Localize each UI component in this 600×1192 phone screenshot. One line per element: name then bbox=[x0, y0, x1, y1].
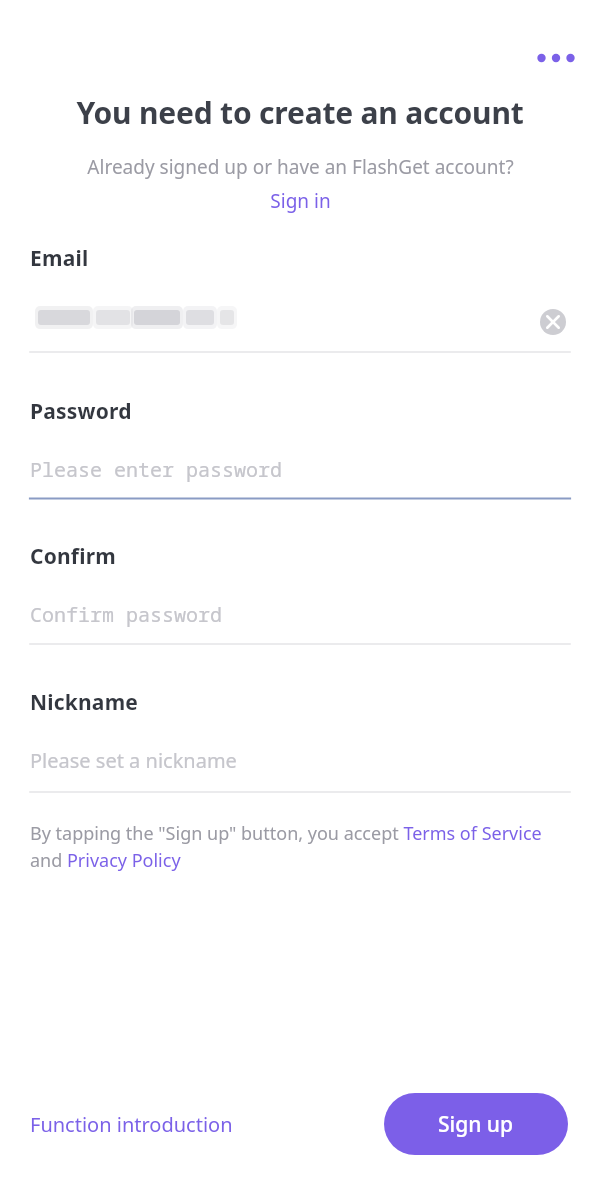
button[interactable]: Clear email bbox=[30, 305, 570, 339]
button[interactable]: Confirm password bbox=[30, 601, 570, 628]
staticText: Email bbox=[30, 244, 89, 273]
button[interactable]: Sign up bbox=[384, 1093, 568, 1155]
staticText: Please set a nickname bbox=[30, 747, 237, 774]
button[interactable]: By tapping the "Sign up" button, you acc… bbox=[30, 821, 570, 872]
staticText: Confirm password bbox=[30, 601, 222, 628]
button[interactable]: More options bbox=[534, 36, 578, 80]
button[interactable]: Clear email bbox=[536, 305, 570, 339]
staticText: Nickname bbox=[30, 688, 139, 717]
button[interactable]: Function introduction bbox=[30, 1101, 233, 1148]
staticText: Sign up bbox=[438, 1110, 514, 1139]
staticText: Password bbox=[30, 397, 132, 426]
staticText: Please enter password bbox=[30, 456, 282, 483]
button[interactable]: Please set a nickname bbox=[30, 747, 570, 774]
button[interactable]: Sign in bbox=[262, 186, 339, 216]
staticText: Sign in bbox=[270, 188, 331, 214]
staticText: Already signed up or have an FlashGet ac… bbox=[87, 154, 514, 180]
staticText: By tapping the "Sign up" button, you acc… bbox=[30, 821, 570, 872]
staticText: You need to create an account bbox=[76, 92, 524, 133]
staticText: Function introduction bbox=[30, 1111, 233, 1138]
staticText: Confirm bbox=[30, 542, 116, 571]
button[interactable]: Please enter password bbox=[30, 456, 570, 483]
